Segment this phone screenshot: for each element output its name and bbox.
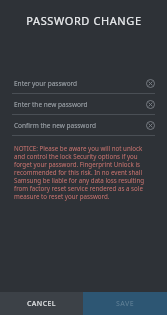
staticText: SAVE [116, 299, 134, 309]
staticText: Confirm the new password [14, 121, 143, 130]
staticText: CANCEL [27, 299, 56, 309]
button[interactable]: Clear Enter the new password [143, 97, 157, 111]
button[interactable]: Enter your password [0, 73, 167, 93]
button[interactable]: Enter the new password [0, 94, 167, 114]
button[interactable]: Confirm the new password [0, 115, 167, 135]
button[interactable]: CANCEL [0, 292, 83, 315]
button[interactable]: Clear Confirm the new password [143, 118, 157, 132]
staticText: Enter the new password [14, 100, 143, 109]
button[interactable]: SAVE [83, 292, 167, 315]
button[interactable]: Clear Enter your password [143, 76, 157, 90]
staticText: PASSWORD CHANGE [26, 13, 142, 28]
staticText: Enter your password [14, 79, 143, 88]
staticText: NOTICE: Please be aware you will not unl… [14, 144, 153, 200]
